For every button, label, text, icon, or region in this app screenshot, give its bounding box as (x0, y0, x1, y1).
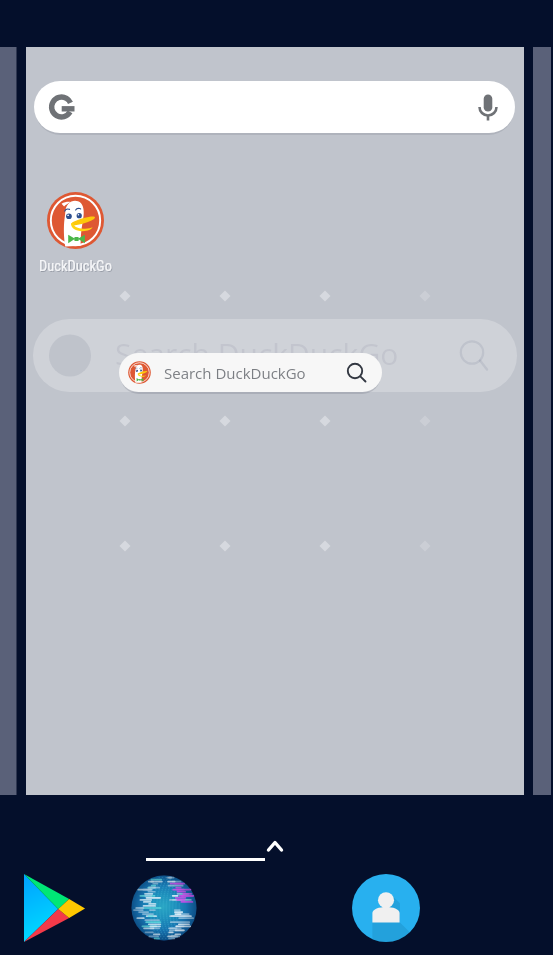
staticText: Search DuckDuckGo (115, 333, 399, 374)
staticText: Search DuckDuckGo (164, 363, 306, 383)
button[interactable]: DuckDuckGo (28, 192, 123, 275)
button[interactable]: Browser (131, 875, 197, 941)
button[interactable]: Google search (34, 81, 515, 133)
button[interactable]: Play Store (24, 874, 86, 942)
button[interactable]: Contacts (352, 874, 420, 942)
button[interactable]: Search DuckDuckGo widget (119, 353, 382, 392)
staticText: DuckDuckGo (39, 258, 112, 275)
staticText: DuckDuckGo (40, 259, 113, 276)
